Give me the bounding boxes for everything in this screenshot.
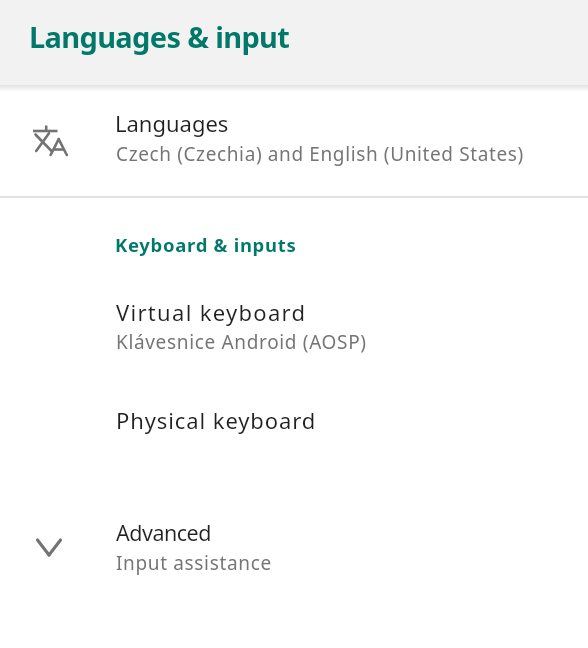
staticText: Languages (115, 108, 229, 138)
staticText: Input assistance (116, 550, 272, 576)
button[interactable]: Physical keyboard (0, 390, 588, 462)
button[interactable]: Advanced (0, 508, 588, 588)
staticText: Physical keyboard (116, 405, 317, 435)
button[interactable]: Virtual keyboard (0, 283, 588, 375)
button[interactable]: Languages & input (0, 0, 588, 85)
staticText: Keyboard & inputs (115, 232, 297, 257)
staticText: Klávesnice Android (AOSP) (116, 329, 367, 355)
staticText: Virtual keyboard (116, 297, 307, 327)
staticText: Advanced (116, 518, 211, 547)
staticText: Languages & input (29, 17, 290, 56)
button[interactable]: Languages (0, 92, 588, 196)
staticText: Czech (Czechia) and English (United Stat… (116, 141, 524, 167)
